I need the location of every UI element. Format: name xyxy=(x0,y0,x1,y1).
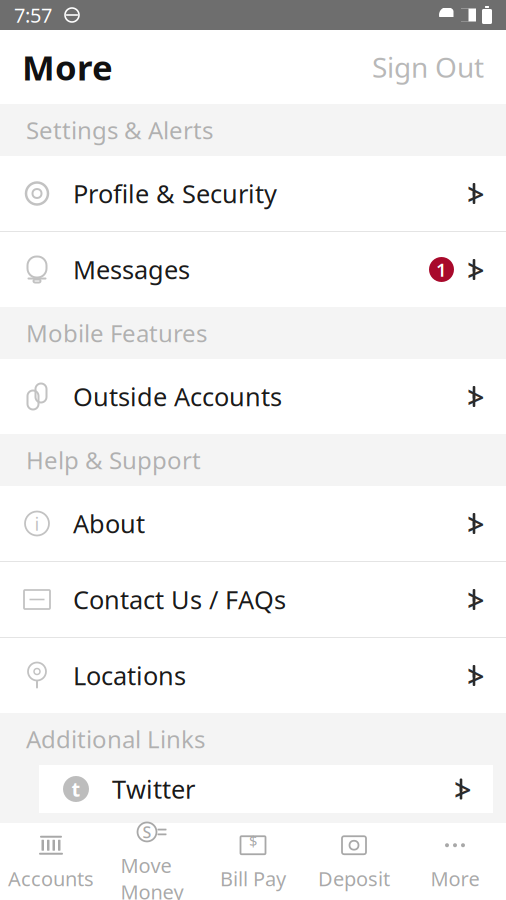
button[interactable]: Locations xyxy=(0,638,506,713)
staticText: t xyxy=(71,776,80,802)
staticText: More xyxy=(22,44,113,90)
staticText: Move Money xyxy=(120,852,183,900)
button[interactable]: t xyxy=(39,751,493,826)
staticText: Twitter xyxy=(112,772,195,806)
button[interactable]: $ xyxy=(202,823,303,900)
staticText: Deposit xyxy=(318,865,390,892)
staticText: S xyxy=(142,821,151,842)
staticText: Locations xyxy=(73,659,186,692)
staticText: > xyxy=(467,579,485,620)
staticText: > xyxy=(454,769,472,809)
staticText: > xyxy=(467,376,485,417)
button[interactable]: Accounts xyxy=(0,823,101,900)
button[interactable]: Profile & Security xyxy=(0,156,506,231)
button[interactable]: i xyxy=(0,486,506,561)
staticText: Outside Accounts xyxy=(73,380,282,413)
staticText: Help & Support xyxy=(26,444,201,476)
staticText: Contact Us / FAQs xyxy=(73,583,286,616)
staticText: > xyxy=(467,503,485,544)
button[interactable]: Sign Out xyxy=(366,38,490,96)
button[interactable]: More xyxy=(404,823,505,900)
staticText: $ xyxy=(249,831,257,850)
button[interactable]: S xyxy=(101,823,202,900)
staticText: > xyxy=(467,173,485,214)
staticText: Profile & Security xyxy=(73,177,277,210)
staticText: > xyxy=(467,249,485,290)
staticText: Additional Links xyxy=(26,723,205,755)
staticText: Bill Pay xyxy=(220,865,286,892)
staticText: Mobile Features xyxy=(26,317,207,349)
staticText: Settings & Alerts xyxy=(26,114,213,146)
button[interactable]: Contact Us / FAQs xyxy=(0,562,506,637)
staticText: i xyxy=(34,511,39,536)
staticText: Sign Out xyxy=(372,48,484,86)
staticText: Messages xyxy=(73,253,190,286)
staticText: About xyxy=(73,507,145,540)
button[interactable]: Deposit xyxy=(303,823,404,900)
staticText: 7:57 xyxy=(14,2,52,28)
button[interactable]: Outside Accounts xyxy=(0,359,506,434)
staticText: > xyxy=(467,655,485,696)
staticText: More xyxy=(430,865,479,892)
staticText: Accounts xyxy=(8,865,94,892)
staticText: 1 xyxy=(436,257,447,282)
button[interactable]: Messages xyxy=(0,232,506,307)
